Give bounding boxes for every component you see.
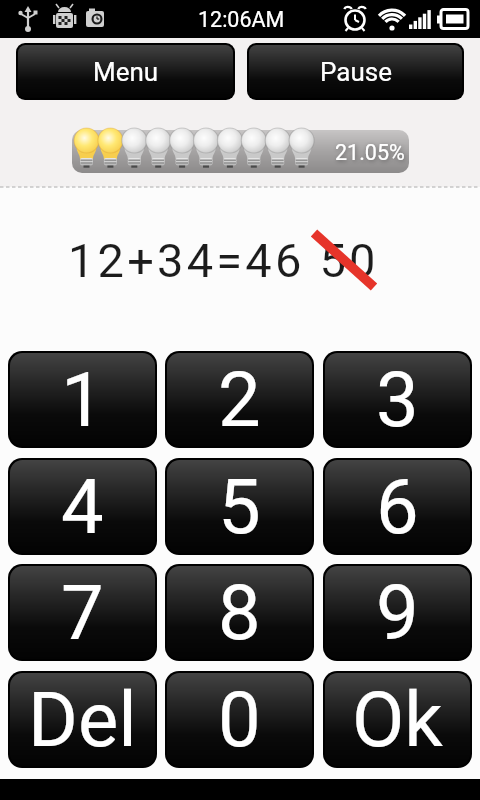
button[interactable]: 7: [8, 564, 157, 661]
staticText: 0: [218, 675, 261, 764]
staticText: 12+34=46 50: [68, 233, 379, 288]
staticText: 8: [218, 568, 261, 657]
button[interactable]: 9: [323, 564, 472, 661]
button[interactable]: 4: [8, 458, 157, 555]
staticText: Menu: [93, 57, 159, 87]
staticText: 21.05%: [335, 140, 405, 165]
staticText: Del: [28, 675, 137, 764]
staticText: 9: [376, 568, 419, 657]
staticText: Pause: [320, 57, 392, 87]
button[interactable]: 2: [165, 351, 314, 448]
button[interactable]: 8: [165, 564, 314, 661]
button[interactable]: 0: [165, 671, 314, 768]
staticText: 1: [61, 355, 104, 444]
button[interactable]: 5: [165, 458, 314, 555]
staticText: Ok: [352, 675, 443, 764]
button[interactable]: Pause: [247, 43, 464, 100]
staticText: 6: [376, 462, 419, 551]
button[interactable]: Del: [8, 671, 157, 768]
staticText: 5: [218, 462, 261, 551]
staticText: 4: [61, 462, 104, 551]
staticText: 2: [218, 355, 261, 444]
button[interactable]: Ok: [323, 671, 472, 768]
button[interactable]: 6: [323, 458, 472, 555]
button[interactable]: 1: [8, 351, 157, 448]
button[interactable]: 3: [323, 351, 472, 448]
staticText: 7: [61, 568, 104, 657]
staticText: 12:06AM: [198, 7, 285, 32]
button[interactable]: Menu: [16, 43, 235, 100]
staticText: 3: [376, 355, 419, 444]
